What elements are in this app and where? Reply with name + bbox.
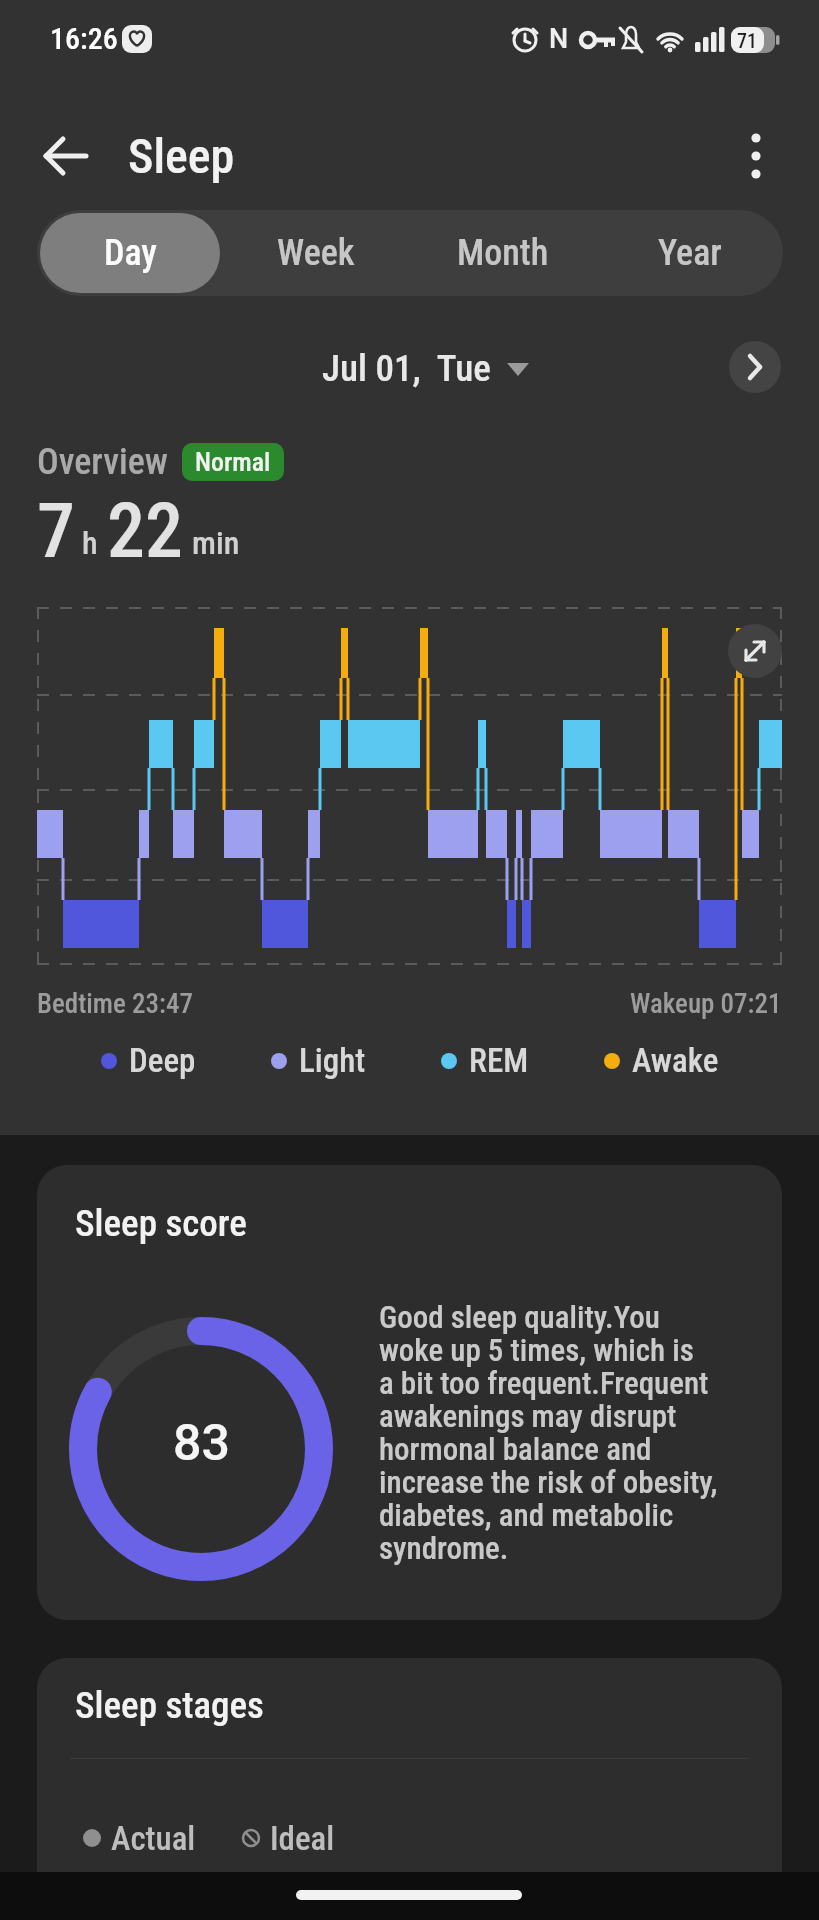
button[interactable]	[729, 341, 781, 393]
staticText: Ideal	[270, 1819, 335, 1858]
staticText: Light	[299, 1041, 366, 1080]
staticText: Sleep stages	[75, 1684, 264, 1727]
staticText: Jul 01, Tue	[322, 347, 491, 390]
button[interactable]	[37, 607, 782, 965]
staticText: Year	[658, 232, 722, 274]
staticText: Sleep score	[75, 1202, 247, 1245]
staticText: Bedtime 23:47	[37, 988, 193, 1020]
button[interactable]: REM	[441, 1041, 529, 1080]
button[interactable]: Light	[271, 1041, 366, 1080]
button[interactable]: Normal	[195, 447, 271, 477]
staticText: Sleep	[128, 128, 235, 184]
button[interactable]: Week	[223, 210, 409, 296]
button[interactable]: Month	[409, 210, 596, 296]
staticText: Deep	[129, 1041, 196, 1080]
staticText: 71	[737, 29, 757, 52]
staticText: 7	[37, 486, 75, 575]
staticText: N	[549, 23, 569, 55]
staticText: Wakeup 07:21	[630, 988, 782, 1020]
button[interactable]: Sleep stages	[37, 1658, 782, 1920]
button[interactable]: Day	[40, 213, 220, 293]
staticText: Day	[104, 232, 157, 274]
staticText: min	[192, 524, 240, 562]
staticText: REM	[469, 1041, 529, 1080]
staticText: Normal	[195, 447, 271, 477]
staticText: Month	[457, 232, 549, 274]
button[interactable]: Sleep score	[37, 1165, 782, 1620]
button[interactable]	[38, 130, 92, 182]
staticText: Good sleep quality.You woke up 5 times, …	[379, 1299, 718, 1567]
staticText: Overview	[37, 441, 168, 483]
staticText: h	[82, 524, 98, 562]
staticText: 22	[107, 486, 183, 575]
button[interactable]: Jul 01, Tue	[322, 347, 529, 390]
button[interactable]: Year	[596, 210, 783, 296]
button[interactable]: Deep	[101, 1041, 196, 1080]
button[interactable]: Awake	[604, 1041, 719, 1080]
staticText: 16:26	[50, 21, 118, 56]
staticText: Actual	[111, 1819, 196, 1858]
staticText: Week	[277, 232, 355, 274]
staticText: Awake	[632, 1041, 719, 1080]
button[interactable]	[736, 128, 776, 184]
staticText: 83	[173, 1414, 230, 1473]
